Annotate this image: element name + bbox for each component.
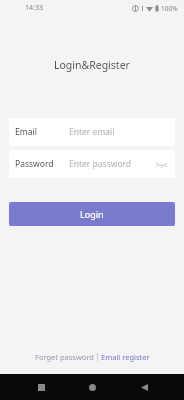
button[interactable]: Email register	[98, 350, 153, 364]
staticText: Enter password	[69, 158, 132, 170]
staticText: Login&Register	[54, 58, 130, 72]
staticText: Email	[15, 126, 37, 138]
staticText: Login	[80, 208, 104, 220]
staticText: Email register	[101, 352, 150, 362]
staticText: Enter email	[69, 126, 115, 138]
button[interactable]: Home	[81, 376, 103, 398]
staticText: Forget password	[35, 352, 94, 362]
button[interactable]: Login	[9, 202, 175, 226]
staticText: 14:33	[25, 3, 43, 13]
staticText: Password	[15, 158, 54, 170]
button[interactable]: Password	[9, 150, 175, 178]
button[interactable]: Email	[9, 118, 175, 146]
button[interactable]: Show password	[152, 155, 170, 173]
button[interactable]: Recent apps	[30, 376, 52, 398]
button[interactable]: Forget password	[32, 350, 97, 364]
button[interactable]: Back	[133, 376, 155, 398]
staticText: 100%	[161, 4, 178, 13]
